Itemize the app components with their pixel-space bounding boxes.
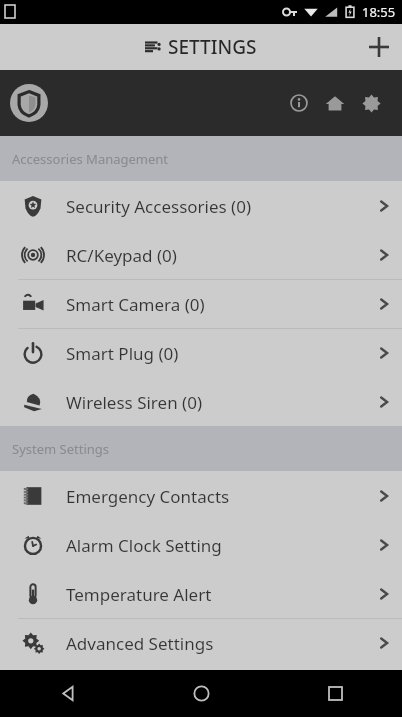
button[interactable]: Back — [0, 670, 134, 717]
staticText: Smart Plug (0) — [66, 342, 366, 365]
button[interactable]: Add — [356, 24, 402, 70]
staticText: Alarm Clock Setting — [66, 534, 366, 557]
button[interactable]: Recent apps — [268, 670, 402, 717]
button[interactable]: Smart Camera (0) — [0, 280, 402, 328]
staticText: Smart Camera (0) — [66, 293, 366, 316]
staticText: RC/Keypad (0) — [66, 244, 366, 267]
button[interactable]: Information — [284, 88, 314, 118]
staticText: Emergency Contacts — [66, 485, 366, 508]
button[interactable]: Wireless Siren (0) — [0, 378, 402, 426]
staticText: Wireless Siren (0) — [66, 391, 366, 414]
button[interactable]: Smart Plug (0) — [0, 329, 402, 377]
button[interactable]: Advanced Settings — [0, 619, 402, 667]
button[interactable]: Settings — [356, 88, 386, 118]
button[interactable]: Logo — [10, 84, 48, 122]
staticText: SETTINGS — [168, 34, 257, 60]
button[interactable]: Temperature Alert — [0, 570, 402, 618]
staticText: Temperature Alert — [66, 583, 366, 606]
staticText: System Settings — [12, 440, 110, 458]
button[interactable]: Alarm Clock Setting — [0, 521, 402, 569]
staticText: Accessories Management — [12, 150, 169, 168]
button[interactable]: RC/Keypad (0) — [0, 231, 402, 279]
button[interactable]: Home — [320, 88, 350, 118]
button[interactable]: Emergency Contacts — [0, 472, 402, 520]
staticText: 18:55 — [362, 3, 396, 21]
button[interactable]: Home — [134, 670, 268, 717]
staticText: Security Accessories (0) — [66, 195, 366, 218]
staticText: Advanced Settings — [66, 632, 366, 655]
button[interactable]: Security Accessories (0) — [0, 182, 402, 230]
